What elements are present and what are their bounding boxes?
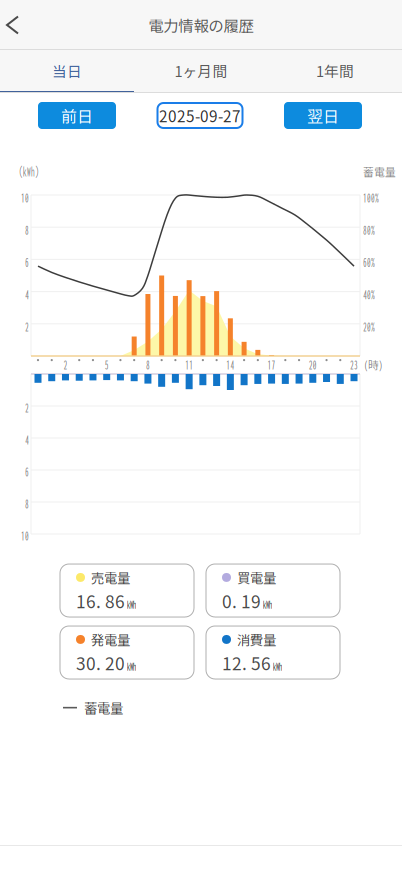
staticText: 消費量 [237,630,276,649]
staticText: 20 [309,357,317,372]
staticText: (時) [364,357,383,372]
staticText: 8 [25,222,29,238]
staticText: 10 [21,528,29,543]
staticText: 100% [363,190,379,205]
staticText: 8 [146,357,150,372]
staticText: 前日 [61,104,93,127]
button[interactable]: 1ヶ月間 [134,50,268,93]
button[interactable]: 発電量 [60,626,194,679]
staticText: 1ヶ月間 [174,60,227,81]
staticText: 10 [21,190,29,205]
button[interactable]: 前日 [38,102,116,129]
staticText: kWh [127,597,136,611]
staticText: 0. 19 [222,588,261,613]
staticText: 20% [363,319,375,334]
staticText: 翌日 [307,104,339,127]
staticText: kWh [263,597,272,611]
staticText: 電力情報の履歴 [148,14,253,36]
button[interactable]: 1年間 [268,50,402,93]
staticText: 5 [105,357,109,372]
staticText: 11 [185,357,193,372]
staticText: 2 [63,357,67,372]
staticText: 蓄電量 [84,698,123,717]
staticText: 23 [350,357,358,372]
staticText: 2025-09-27 [159,104,241,127]
staticText: 14 [226,357,234,372]
staticText: 30. 20 [76,650,125,675]
staticText: 当日 [52,60,82,81]
staticText: 買電量 [237,568,276,587]
staticText: 4 [25,432,29,447]
staticText: (kWh) [19,164,39,179]
staticText: 2 [25,319,29,334]
staticText: 16. 86 [76,588,125,613]
staticText: 1年間 [316,60,354,81]
staticText: 6 [25,464,29,479]
button[interactable]: Back [0,2,32,47]
staticText: 4 [25,287,29,302]
staticText: 蓄電量 [363,164,396,179]
staticText: 12. 56 [222,650,271,675]
staticText: 発電量 [91,630,130,649]
staticText: 6 [25,254,29,270]
button[interactable]: 買電量 [206,564,340,617]
staticText: 80% [363,222,375,238]
staticText: 2 [25,400,29,415]
staticText: 17 [268,357,276,372]
staticText: 売電量 [91,568,130,587]
staticText: kWh [127,659,136,673]
button[interactable]: 消費量 [206,626,340,679]
button[interactable]: 翌日 [284,102,362,129]
button[interactable]: 売電量 [60,564,194,617]
staticText: 60% [363,254,375,270]
staticText: kWh [273,659,282,673]
button[interactable]: 当日 [0,50,134,93]
button[interactable]: 2025-09-27 [157,103,242,128]
staticText: 8 [25,496,29,511]
staticText: 40% [363,287,375,302]
